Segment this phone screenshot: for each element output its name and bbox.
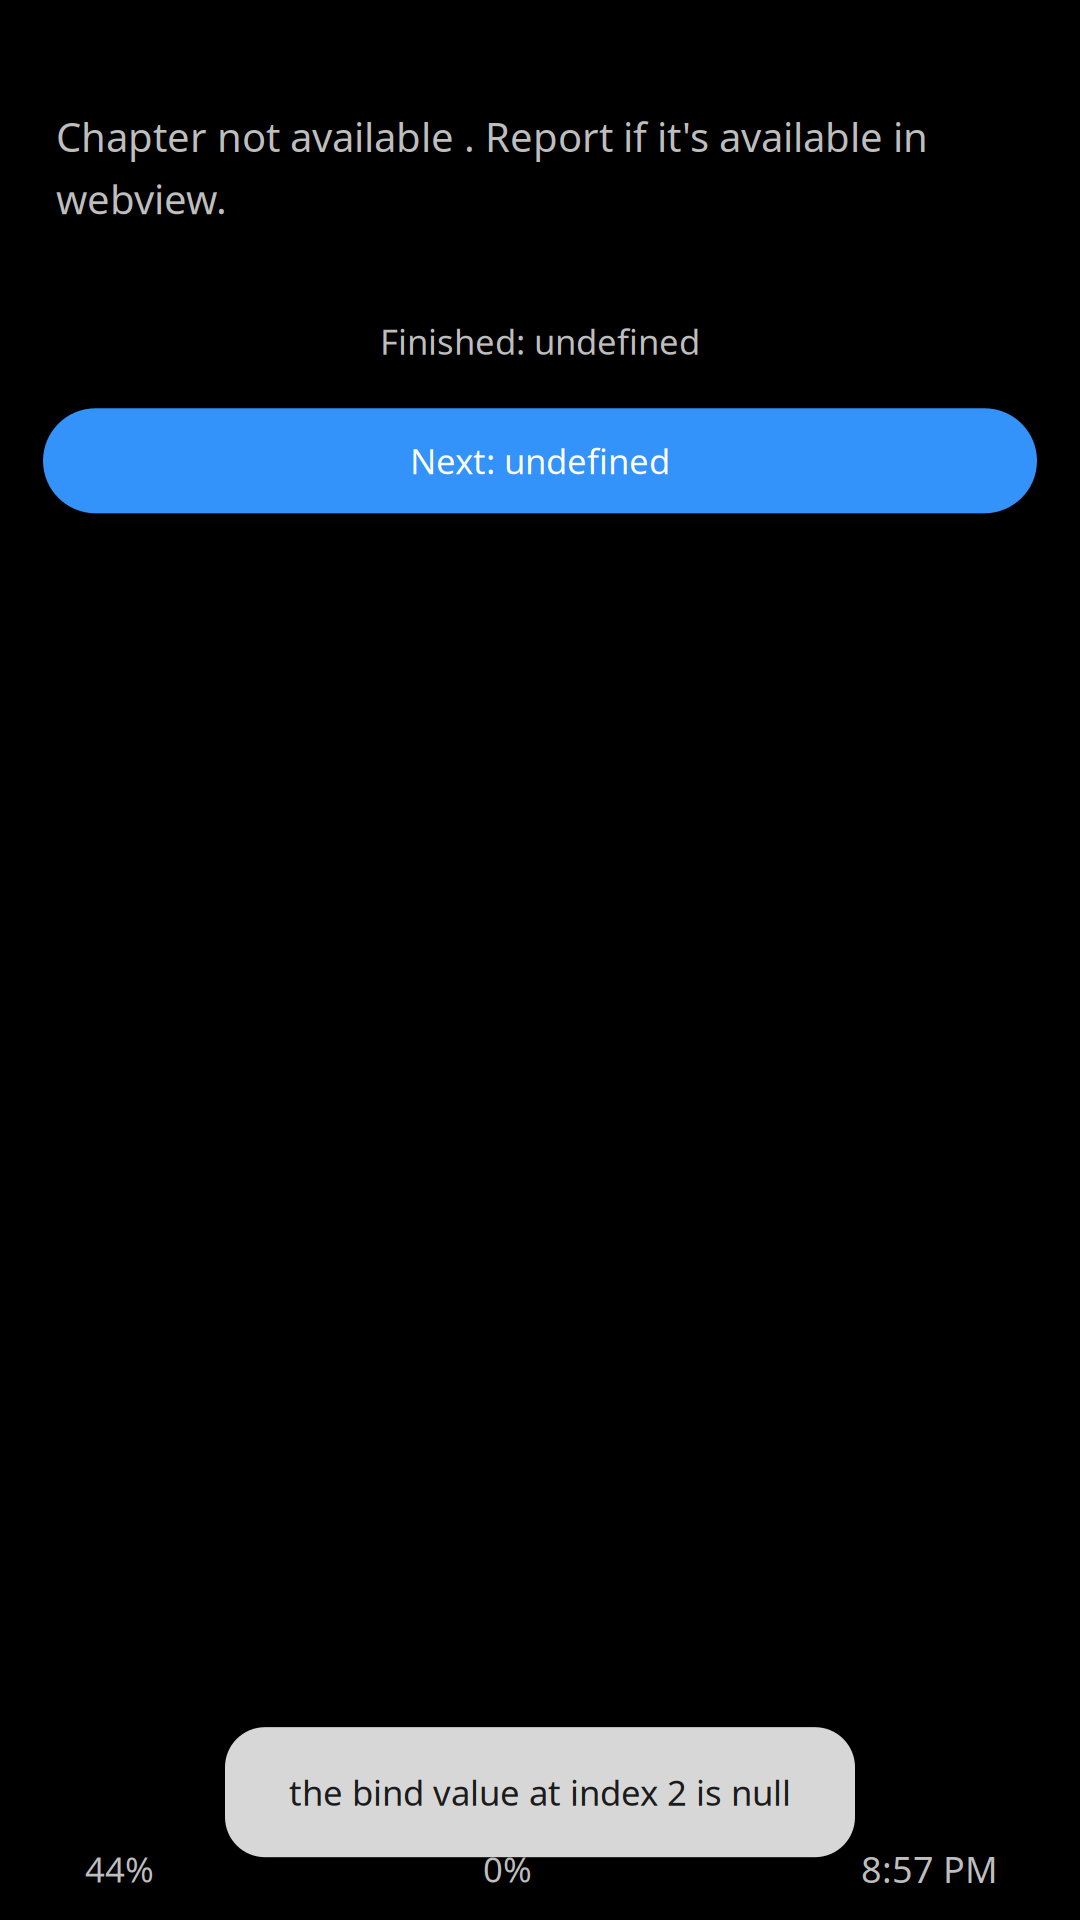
staticText: 0% xyxy=(483,1846,532,1892)
staticText: Chapter not available . Report if it's a… xyxy=(56,110,928,225)
staticText: Finished: undefined xyxy=(380,318,700,364)
staticText: 8:57 PM xyxy=(861,1845,998,1893)
button[interactable]: Next: undefined xyxy=(43,408,1037,513)
staticText: the bind value at index 2 is null xyxy=(289,1769,791,1815)
staticText: Next: undefined xyxy=(410,438,670,484)
staticText: 44% xyxy=(85,1846,154,1892)
